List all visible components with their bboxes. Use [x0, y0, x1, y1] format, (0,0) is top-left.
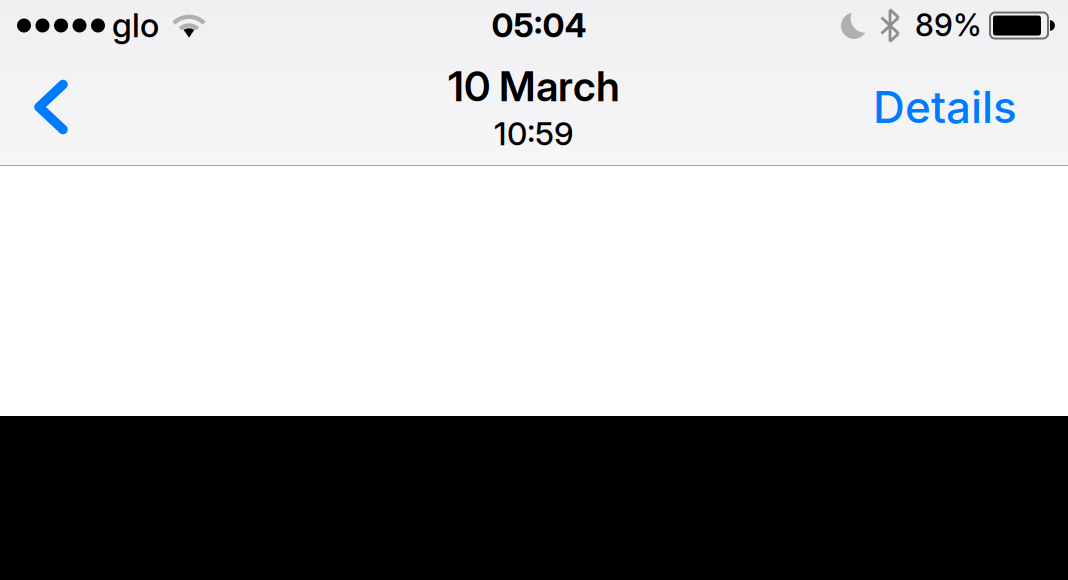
- staticText: Details: [873, 80, 1017, 134]
- staticText: glo: [112, 5, 159, 45]
- staticText: 10:59: [494, 114, 574, 153]
- button[interactable]: Back: [0, 57, 92, 157]
- button[interactable]: Details: [873, 57, 1068, 157]
- staticText: 05:04: [491, 5, 586, 45]
- staticText: 10 March: [448, 61, 620, 111]
- staticText: 89%: [915, 6, 982, 43]
